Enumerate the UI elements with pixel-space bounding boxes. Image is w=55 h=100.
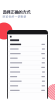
button[interactable]: Data row <box>8 42 47 47</box>
button[interactable]: Data row <box>8 56 47 61</box>
staticText: 选择正确的方式 <box>3 10 31 14</box>
button[interactable]: Data row <box>8 74 47 79</box>
button[interactable]: Data row <box>8 79 47 84</box>
button[interactable]: Menu <box>9 35 12 38</box>
staticText: 浏览你的一切数据 <box>3 15 27 18</box>
button[interactable]: Data row <box>8 61 47 65</box>
button[interactable]: Data row <box>8 70 47 74</box>
button[interactable]: Data row <box>8 88 47 93</box>
button[interactable]: Data row <box>8 51 47 56</box>
button[interactable]: Data row <box>8 65 47 70</box>
button[interactable]: Data row <box>8 84 47 88</box>
button[interactable]: Data row <box>8 47 47 51</box>
